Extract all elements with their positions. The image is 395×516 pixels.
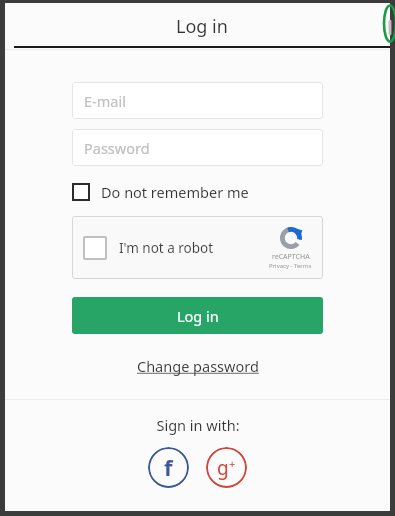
button[interactable]: Change password — [134, 353, 262, 379]
staticText: Privacy - Terms — [269, 262, 312, 270]
staticText: E-mail — [84, 91, 126, 111]
staticText: Sign in with: — [156, 415, 240, 435]
staticText: Do not remember me — [101, 182, 249, 202]
staticText: g — [217, 455, 229, 481]
button[interactable]: Log in — [14, 3, 390, 50]
staticText: Log in — [176, 14, 228, 39]
staticText: Log in — [177, 306, 219, 326]
staticText: f — [164, 452, 173, 482]
staticText: Password — [84, 138, 150, 158]
staticText: reCAPTCHA — [272, 252, 310, 262]
button[interactable]: E-mail — [72, 82, 323, 119]
button[interactable]: Password — [72, 129, 323, 166]
button[interactable]: Sign in with Google Plus — [206, 447, 247, 488]
button[interactable]: Do not remember me — [72, 182, 323, 202]
button[interactable]: Sign in with Facebook — [148, 447, 189, 488]
staticText: + — [229, 456, 236, 471]
button[interactable]: Log in — [72, 297, 323, 334]
staticText: I'm not a robot — [119, 239, 214, 257]
button[interactable]: I'm not a robot — [83, 236, 107, 260]
